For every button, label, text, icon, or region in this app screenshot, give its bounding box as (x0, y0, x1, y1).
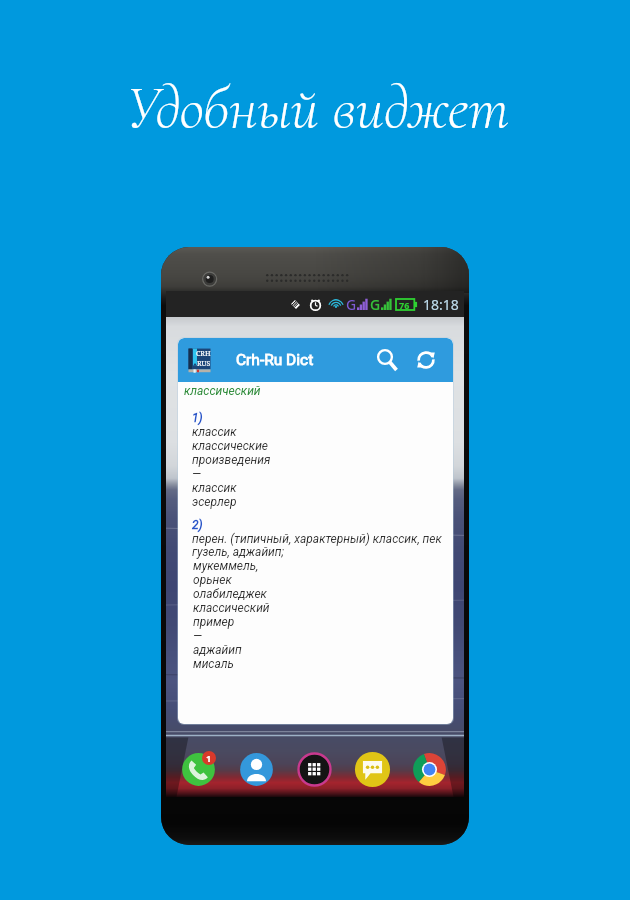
staticText: произведения (192, 453, 271, 467)
staticText: мукеммель, (193, 559, 259, 573)
staticText: эсерлер (192, 495, 237, 509)
staticText: CRH (196, 349, 211, 359)
staticText: 76 (399, 299, 410, 311)
staticText: RUS (197, 359, 211, 369)
staticText: Удобный виджет (126, 72, 509, 145)
button[interactable]: Dictionary icon (178, 338, 453, 724)
staticText: G (370, 295, 381, 314)
staticText: 18:18 (423, 295, 459, 314)
staticText: G (346, 295, 357, 314)
button[interactable]: Dictionary icon (186, 347, 211, 373)
button[interactable]: Contacts (237, 750, 276, 789)
staticText: 2) (192, 518, 203, 532)
staticText: — (192, 467, 202, 481)
button[interactable]: Search (369, 342, 405, 378)
staticText: орьнек (193, 573, 232, 587)
staticText: классик (192, 425, 237, 439)
staticText: аджайип (193, 643, 242, 657)
staticText: перен. (типичный, характерный) классик, … (192, 532, 452, 559)
staticText: — (193, 629, 203, 643)
staticText: олабиледжек (193, 587, 267, 601)
button[interactable]: Chrome (410, 750, 449, 789)
staticText: пример (193, 615, 235, 629)
staticText: классические (192, 439, 269, 453)
staticText: 1) (192, 411, 203, 425)
staticText: 1 (206, 752, 212, 764)
staticText: классический (193, 601, 270, 615)
staticText: классический (184, 384, 261, 398)
button[interactable]: Refresh (408, 342, 444, 378)
button[interactable]: Phone (179, 750, 218, 789)
staticText: классик (192, 481, 237, 495)
staticText: Crh-Ru Dict (236, 351, 314, 369)
button[interactable]: Apps (295, 750, 334, 789)
button[interactable]: Messages (353, 750, 392, 789)
staticText: мисаль (193, 657, 234, 671)
